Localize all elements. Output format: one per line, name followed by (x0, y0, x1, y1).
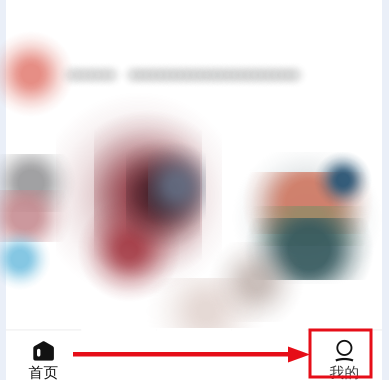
button[interactable]: Tab (156, 328, 232, 380)
staticText: 我的 (329, 364, 359, 380)
button[interactable]: 我的 (307, 328, 382, 380)
button[interactable]: 首页 (6, 328, 81, 380)
button[interactable]: Tab (81, 328, 156, 380)
button[interactable]: Tab (232, 328, 307, 380)
staticText: 首页 (29, 364, 59, 380)
